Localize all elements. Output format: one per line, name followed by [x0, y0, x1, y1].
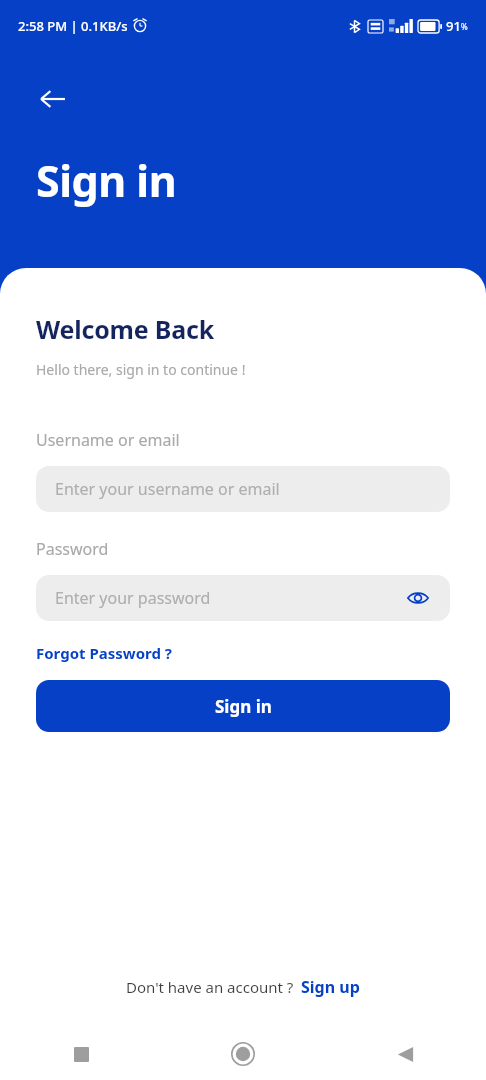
staticText: Password [36, 538, 109, 560]
button[interactable]: Back [324, 1046, 486, 1063]
button[interactable]: Sign up [301, 976, 360, 998]
button[interactable]: Enter your password [36, 575, 450, 621]
staticText: Hello there, sign in to continue ! [36, 360, 246, 379]
staticText: Enter your username or email [55, 478, 280, 500]
staticText: Username or email [36, 429, 180, 451]
staticText: Welcome Back [36, 312, 214, 346]
staticText: % [461, 21, 468, 32]
staticText: Forgot Password ? [36, 643, 172, 663]
staticText: Sign in [36, 151, 177, 210]
staticText: Sign up [301, 976, 360, 998]
staticText: 2:58 PM | 0.1KB/s [18, 17, 128, 35]
button[interactable]: Home [162, 1042, 324, 1066]
button[interactable]: Forgot Password ? [36, 643, 172, 663]
button[interactable]: Enter your username or email [36, 466, 450, 512]
staticText: Sign in [215, 695, 272, 718]
button[interactable]: Recents [0, 1047, 162, 1062]
button[interactable]: Sign in [36, 680, 450, 732]
button[interactable]: Show password [402, 582, 434, 614]
staticText: 91 [446, 17, 461, 35]
button[interactable]: Back [30, 76, 76, 122]
staticText: Don't have an account ? [126, 977, 294, 997]
staticText: Enter your password [55, 587, 211, 609]
